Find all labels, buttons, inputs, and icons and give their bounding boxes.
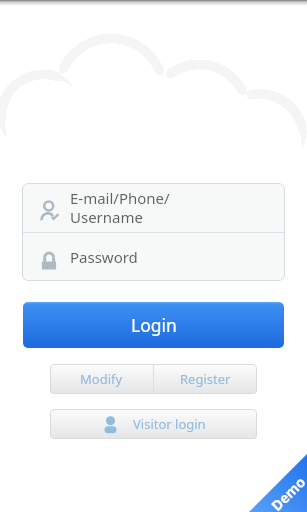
staticText: Password <box>70 247 138 267</box>
staticText: Visitor login <box>133 415 206 433</box>
button[interactable]: Login <box>23 302 284 348</box>
staticText: Demo <box>267 472 307 512</box>
staticText: Modify <box>80 370 123 388</box>
staticText: Login <box>131 313 177 337</box>
button[interactable]: Visitor login <box>50 409 257 439</box>
button[interactable]: Register <box>154 364 257 394</box>
button[interactable]: E-mail/Phone/ Username <box>22 183 285 232</box>
button[interactable]: Modify <box>50 364 153 394</box>
button[interactable]: Password <box>22 233 285 280</box>
staticText: E-mail/Phone/ Username <box>70 188 170 227</box>
staticText: Register <box>180 370 231 388</box>
